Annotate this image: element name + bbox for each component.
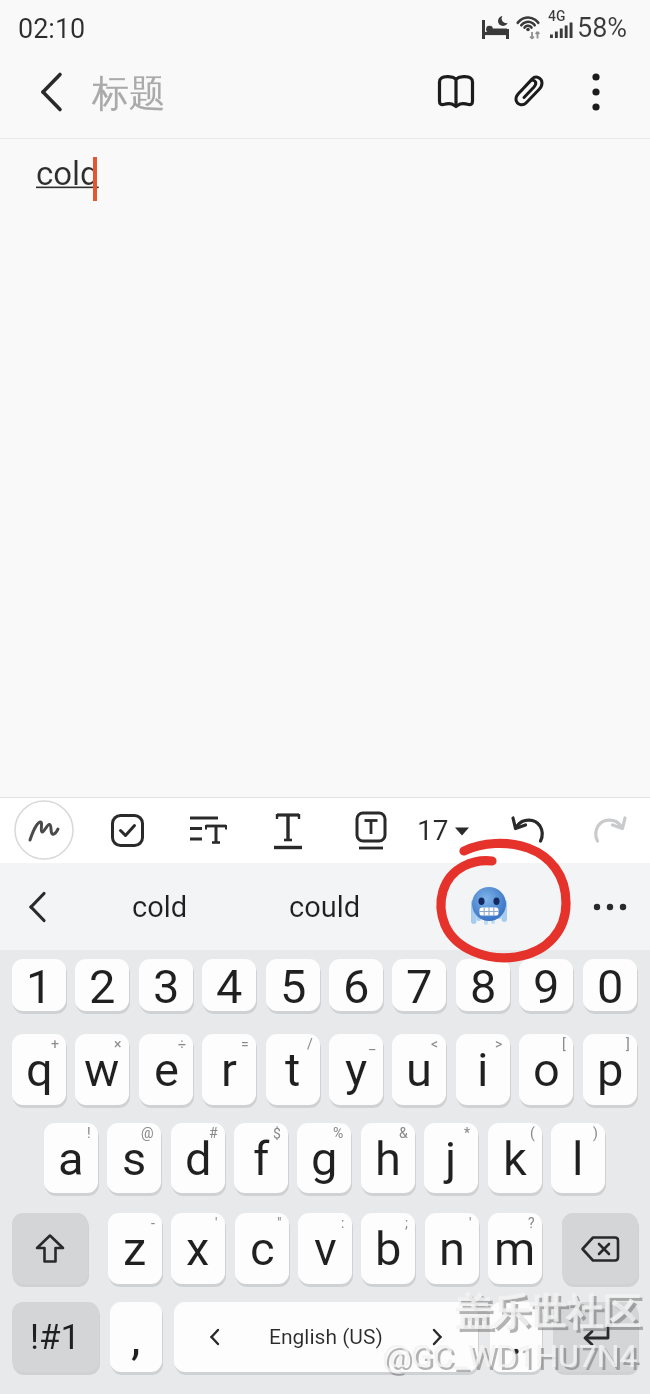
staticText: : (341, 1215, 345, 1231)
button[interactable]: r (202, 1034, 256, 1105)
button[interactable]: w (75, 1034, 129, 1105)
staticText: 盖乐世社区 (455, 1289, 640, 1336)
button[interactable]: v (298, 1213, 352, 1284)
button[interactable]: h (361, 1123, 415, 1193)
staticText: k (503, 1131, 527, 1186)
button[interactable] (458, 877, 520, 937)
staticText: 7 (406, 959, 433, 1011)
button[interactable]: 8 (456, 959, 510, 1011)
staticText: e (154, 1042, 179, 1097)
button[interactable] (562, 1213, 638, 1284)
staticText: _ (369, 1036, 376, 1052)
button[interactable] (26, 64, 78, 120)
button[interactable]: d (171, 1123, 225, 1193)
staticText: > (495, 1036, 503, 1052)
staticText: l (572, 1131, 584, 1186)
button[interactable]: 6 (329, 959, 383, 1011)
staticText: , (131, 1309, 141, 1365)
staticText: 6 (343, 959, 370, 1011)
button[interactable] (580, 881, 640, 933)
button[interactable]: , (110, 1302, 162, 1372)
button[interactable]: 2 (75, 959, 129, 1011)
button[interactable]: 0 (583, 959, 637, 1011)
staticText: 标题 (92, 70, 166, 117)
button[interactable] (346, 808, 396, 856)
button[interactable]: t (266, 1034, 320, 1105)
button[interactable]: 9 (519, 959, 573, 1011)
button[interactable]: j (424, 1123, 478, 1193)
button[interactable]: 17 (408, 805, 478, 855)
staticText: ' (215, 1215, 218, 1231)
button[interactable] (104, 808, 150, 852)
staticText: + (51, 1036, 59, 1052)
button[interactable]: . (490, 1302, 542, 1372)
staticText: !#1 (30, 1317, 81, 1358)
staticText: . (510, 1309, 523, 1365)
button[interactable]: m (488, 1213, 542, 1284)
button[interactable] (576, 64, 616, 120)
button[interactable] (184, 808, 234, 852)
button[interactable]: f (234, 1123, 288, 1193)
button[interactable] (580, 806, 640, 854)
button[interactable] (12, 1213, 88, 1284)
button[interactable] (504, 64, 554, 116)
button[interactable]: q (12, 1034, 66, 1105)
staticText: a (58, 1131, 84, 1186)
staticText: @ (141, 1125, 154, 1141)
button[interactable]: cold (95, 877, 225, 937)
staticText: [ (562, 1036, 566, 1052)
staticText: cold (36, 154, 99, 193)
staticText: ' (469, 1215, 472, 1231)
button[interactable] (10, 881, 66, 933)
button[interactable]: g (297, 1123, 351, 1193)
staticText: h (375, 1131, 401, 1186)
button[interactable]: n (425, 1213, 479, 1284)
button[interactable]: 1 (12, 959, 66, 1011)
button[interactable]: y (329, 1034, 383, 1105)
button[interactable] (14, 800, 74, 860)
button[interactable] (553, 1302, 638, 1372)
staticText: ; (405, 1215, 408, 1231)
button[interactable]: k (488, 1123, 542, 1193)
staticText: cold (132, 890, 188, 924)
staticText: ) (593, 1125, 598, 1141)
button[interactable]: z (108, 1213, 162, 1284)
button[interactable]: o (519, 1034, 573, 1105)
button[interactable]: x (171, 1213, 225, 1284)
staticText: r (221, 1042, 237, 1097)
button[interactable]: e (139, 1034, 193, 1105)
staticText: w (84, 1042, 120, 1097)
button[interactable]: 3 (139, 959, 193, 1011)
button[interactable]: a (44, 1123, 98, 1193)
staticText: f (253, 1131, 270, 1186)
staticText: 1 (26, 959, 53, 1011)
staticText: 盖乐世社区 (458, 1292, 643, 1339)
staticText: & (399, 1125, 408, 1141)
button[interactable]: s (107, 1123, 161, 1193)
button[interactable]: 7 (392, 959, 446, 1011)
button[interactable] (430, 66, 482, 118)
button[interactable]: p (583, 1034, 637, 1105)
button[interactable] (498, 806, 558, 854)
button[interactable]: 5 (266, 959, 320, 1011)
staticText: 4 (216, 959, 243, 1011)
button[interactable]: 4 (202, 959, 256, 1011)
staticText: * (464, 1125, 471, 1141)
button[interactable]: b (361, 1213, 415, 1284)
staticText: g (311, 1131, 338, 1186)
button[interactable]: could (258, 877, 392, 937)
staticText: = (241, 1036, 249, 1052)
button[interactable]: !#1 (12, 1302, 99, 1372)
button[interactable]: u (392, 1034, 446, 1105)
button[interactable]: i (456, 1034, 510, 1105)
button[interactable]: l (551, 1123, 605, 1193)
staticText: 2 (89, 959, 116, 1011)
staticText: could (289, 890, 361, 924)
button[interactable]: c (235, 1213, 289, 1284)
staticText: @GC_WD1HU7N4 (382, 1337, 638, 1375)
button[interactable]: English (US) (174, 1302, 478, 1372)
staticText: v (314, 1221, 337, 1276)
button[interactable] (262, 808, 314, 854)
staticText: o (533, 1042, 560, 1097)
staticText: × (114, 1036, 122, 1052)
